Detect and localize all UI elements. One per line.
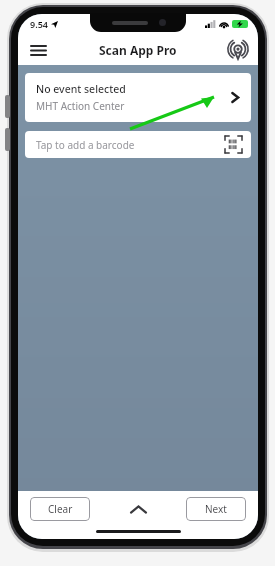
- button[interactable]: Scan barcode: [224, 135, 243, 154]
- staticText: MHT Action Center: [36, 99, 125, 113]
- button[interactable]: No event selected: [25, 73, 251, 122]
- staticText: Clear: [48, 502, 73, 516]
- button[interactable]: Clear: [30, 497, 90, 521]
- button[interactable]: Beacon scan: [224, 36, 252, 64]
- staticText: Tap to add a barcode: [36, 138, 224, 152]
- button[interactable]: Tap to add a barcode: [25, 131, 251, 158]
- button[interactable]: Expand: [121, 497, 155, 521]
- staticText: 9.54: [30, 18, 48, 30]
- button[interactable]: Next: [186, 497, 246, 521]
- staticText: Next: [205, 502, 227, 516]
- staticText: No event selected: [36, 82, 126, 96]
- staticText: Scan App Pro: [99, 42, 177, 58]
- button[interactable]: Menu: [25, 37, 51, 63]
